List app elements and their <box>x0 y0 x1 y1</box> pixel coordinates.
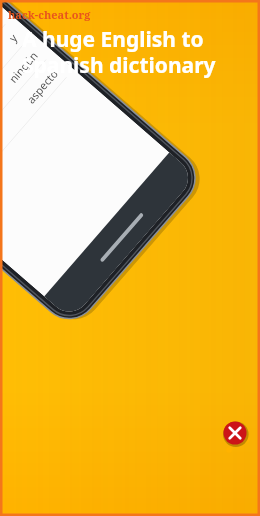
button[interactable]: Close ad <box>0 0 260 516</box>
